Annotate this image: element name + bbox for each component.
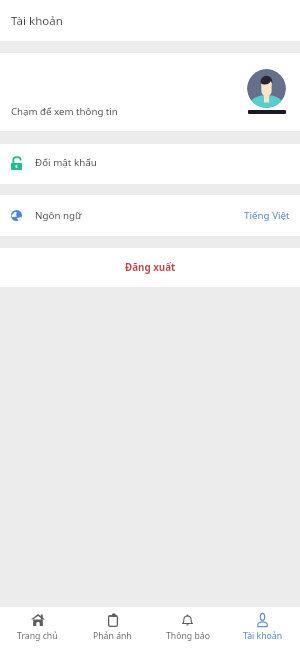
button[interactable]: Thông báo [150,613,225,644]
staticText: Tài khoản [243,630,283,642]
staticText: Phản ánh [93,630,132,642]
staticText: Trang chủ [17,630,58,642]
button[interactable]: Chạm để xem thông tin [0,53,300,131]
button[interactable]: Tài khoản [225,613,300,644]
staticText: Đổi mật khẩu [35,156,97,169]
staticText: Thông báo [166,630,210,642]
staticText: Tài khoản [11,13,63,29]
staticText: Tiếng Việt [244,209,290,222]
button[interactable]: Đăng xuất [0,248,300,287]
button[interactable]: Ngôn ngữ [0,195,300,236]
button[interactable]: Đổi mật khẩu [0,144,300,184]
staticText: Ngôn ngữ [35,209,82,222]
staticText: Chạm để xem thông tin [11,105,118,118]
button[interactable]: Trang chủ [0,613,75,644]
staticText: Đăng xuất [125,261,176,274]
button[interactable]: Phản ánh [75,613,150,644]
